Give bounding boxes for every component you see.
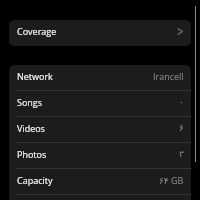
staticText: ۶۴ GB bbox=[159, 174, 184, 186]
staticText: ۰ bbox=[179, 97, 184, 107]
staticText: Videos bbox=[17, 122, 45, 134]
button[interactable]: Capacity bbox=[9, 169, 191, 195]
button[interactable]: Photos bbox=[9, 143, 191, 169]
staticText: Network bbox=[17, 70, 53, 82]
staticText: Irancell bbox=[153, 70, 184, 82]
staticText: Capacity bbox=[17, 174, 53, 186]
button[interactable]: Coverage bbox=[9, 20, 191, 46]
staticText: Coverage bbox=[17, 25, 57, 37]
staticText: ۳ bbox=[179, 149, 184, 159]
staticText: ۶ bbox=[179, 123, 184, 133]
button[interactable]: Network bbox=[9, 65, 191, 91]
button[interactable]: Videos bbox=[9, 117, 191, 143]
other: Open coverage details bbox=[177, 28, 184, 35]
staticText: Songs bbox=[17, 96, 43, 108]
staticText: Photos bbox=[17, 148, 47, 160]
button[interactable]: Songs bbox=[9, 91, 191, 117]
